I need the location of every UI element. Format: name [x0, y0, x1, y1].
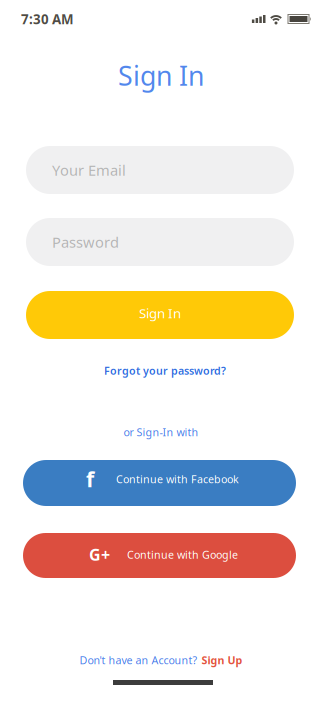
staticText: Don't have an Account? — [79, 653, 197, 667]
button[interactable]: Your Email — [26, 146, 294, 194]
button[interactable]: Don't have an Account? — [81, 653, 244, 667]
staticText: Sign In — [139, 304, 181, 322]
staticText: G+ — [89, 544, 110, 565]
staticText: or Sign-In with — [123, 425, 198, 439]
staticText: Your Email — [52, 160, 126, 180]
button[interactable]: Sign In — [26, 291, 294, 339]
staticText: Password — [52, 232, 119, 252]
staticText: Forgot your password? — [104, 363, 226, 378]
button[interactable]: G+ — [23, 533, 296, 578]
button[interactable]: Password — [26, 218, 294, 266]
button[interactable]: f — [23, 460, 296, 506]
staticText: Sign In — [118, 58, 204, 93]
staticText: Continue with Google — [127, 547, 238, 562]
staticText: Sign Up — [201, 653, 242, 667]
staticText: f — [86, 465, 94, 493]
staticText: 7:30 AM — [21, 10, 74, 28]
button[interactable]: Forgot your password? — [102, 362, 224, 379]
staticText: Continue with Facebook — [116, 472, 239, 486]
